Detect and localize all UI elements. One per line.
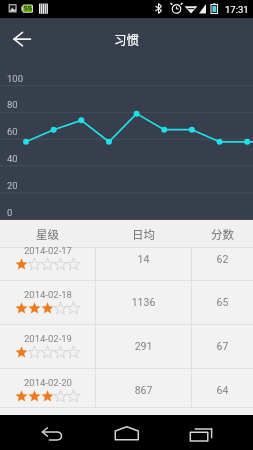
staticText: 65 <box>192 296 253 308</box>
button[interactable]: 2014-02-18 <box>0 281 253 325</box>
staticText: 分数 <box>211 226 234 243</box>
staticText: 2014-02-19 <box>24 333 72 344</box>
button[interactable]: Back <box>0 19 38 57</box>
button[interactable]: Back <box>0 415 85 450</box>
staticText: 14 <box>96 253 191 265</box>
staticText: 60 <box>7 126 18 137</box>
staticText: 日均 <box>132 226 155 243</box>
button[interactable]: Recents <box>169 415 253 450</box>
staticText: 291 <box>96 340 191 352</box>
staticText: 2014-02-20 <box>24 377 72 388</box>
staticText: 867 <box>96 384 191 396</box>
staticText: 2014-02-18 <box>24 289 72 300</box>
button[interactable]: 2014-02-19 <box>0 325 253 369</box>
button[interactable]: 2014-02-20 <box>0 369 253 408</box>
button[interactable]: Home <box>85 415 169 450</box>
staticText: 0 <box>7 207 13 218</box>
staticText: 1136 <box>96 296 191 308</box>
staticText: 100 <box>7 73 24 84</box>
staticText: 2014-02-17 <box>24 245 72 256</box>
staticText: 67 <box>192 340 253 352</box>
button[interactable]: 2014-02-17 <box>0 248 253 281</box>
staticText: 星级 <box>36 226 59 243</box>
staticText: 62 <box>192 253 253 265</box>
staticText: 20 <box>7 180 18 191</box>
staticText: 习惯 <box>114 30 140 48</box>
staticText: 17:31 <box>225 4 249 15</box>
staticText: 80 <box>7 99 18 110</box>
staticText: 40 <box>7 153 18 164</box>
staticText: 64 <box>192 384 253 396</box>
